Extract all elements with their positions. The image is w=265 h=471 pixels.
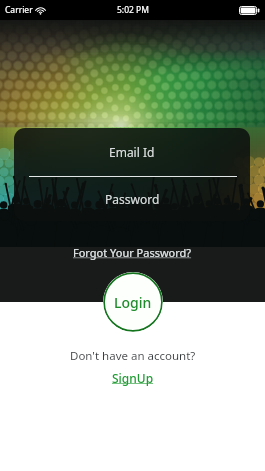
staticText: Password — [105, 191, 160, 207]
button[interactable]: Forgot Your Password? — [70, 242, 195, 263]
staticText: Forgot Your Password? — [73, 245, 192, 260]
staticText: Email Id — [109, 144, 155, 160]
staticText: Don't have an account? — [70, 348, 196, 364]
staticText: Login — [114, 293, 152, 312]
staticText: 5:02 PM — [117, 4, 149, 16]
staticText: SignUp — [112, 370, 154, 386]
button[interactable]: Login — [103, 272, 163, 332]
staticText: Carrier — [5, 4, 33, 16]
button[interactable]: Email Id — [14, 128, 250, 176]
button[interactable]: SignUp — [109, 370, 157, 386]
button[interactable]: Password — [14, 177, 250, 221]
